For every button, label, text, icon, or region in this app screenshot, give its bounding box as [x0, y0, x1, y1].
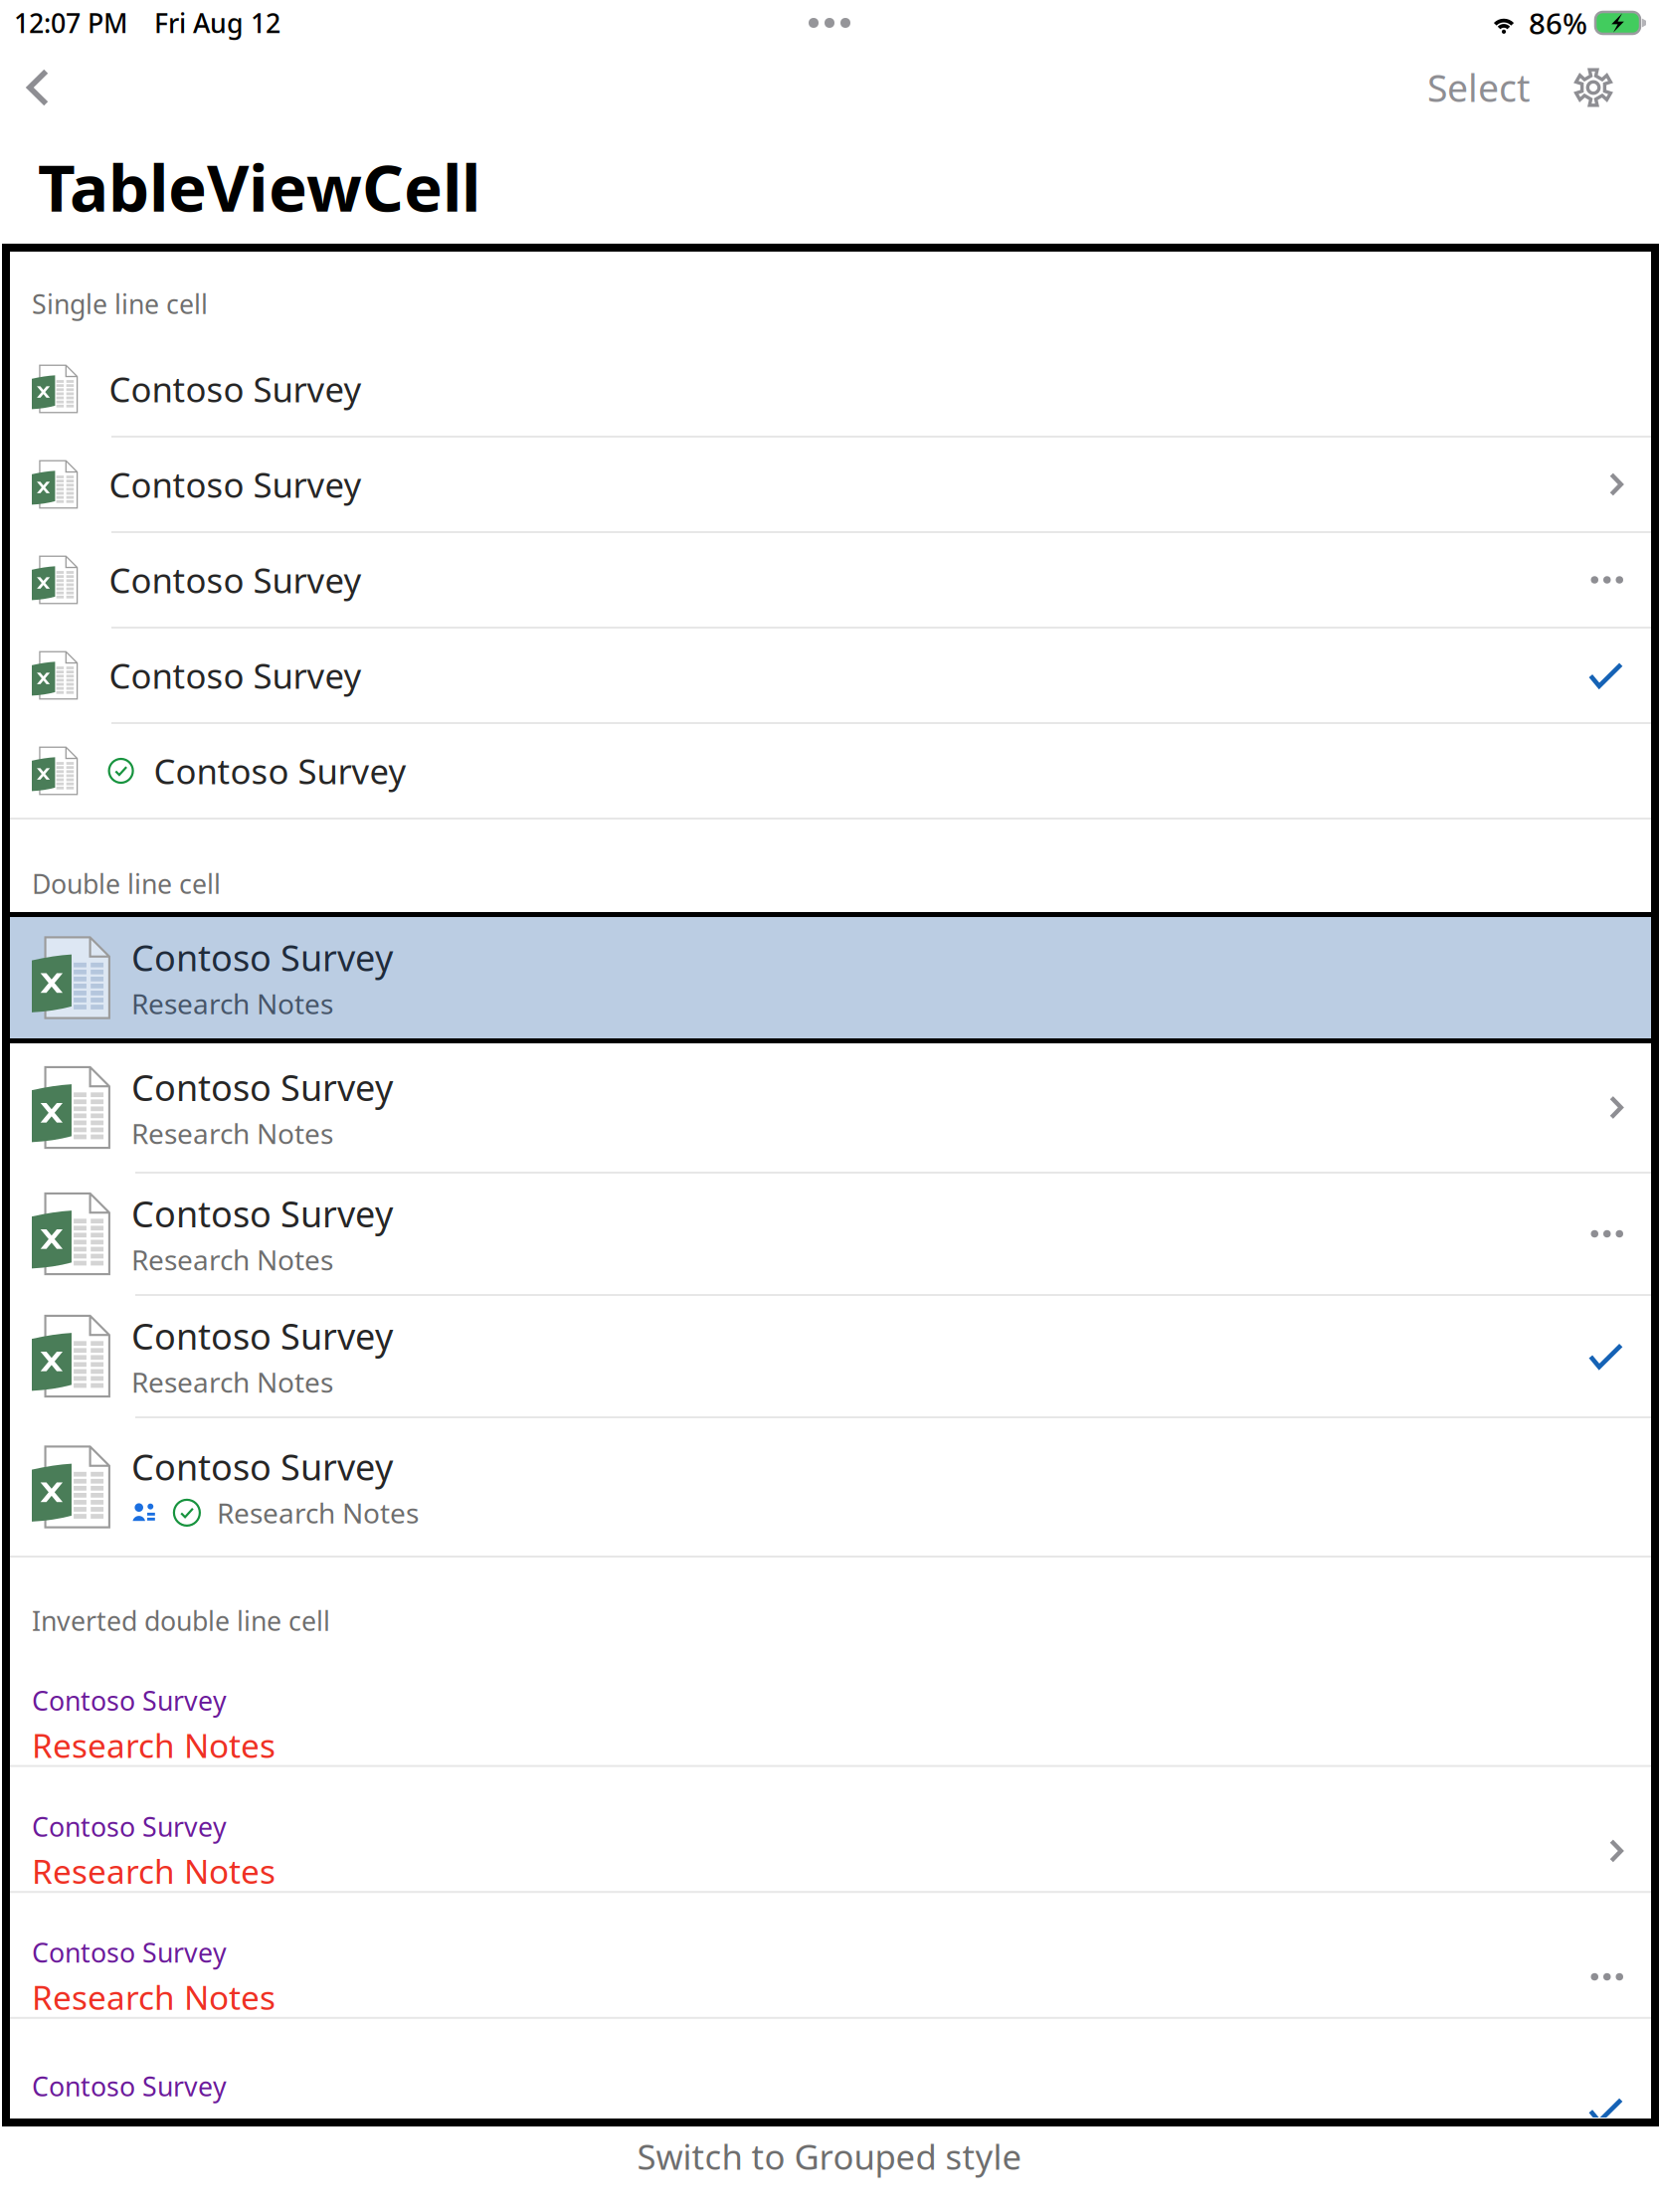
staticText: Research Notes: [32, 1975, 276, 2019]
staticText: Contoso Survey: [109, 557, 362, 603]
staticText: Fri Aug 12: [154, 5, 280, 40]
staticText: Contoso Survey: [109, 652, 362, 698]
staticText: Research Notes: [217, 1494, 419, 1531]
button[interactable]: Contoso Survey: [10, 1767, 1653, 1891]
button[interactable]: Switch to Grouped style: [0, 2126, 1659, 2212]
staticText: Contoso Survey: [109, 461, 362, 507]
button[interactable]: Contoso Survey: [10, 1893, 1653, 2017]
staticText: Contoso Survey: [131, 1312, 393, 1359]
staticText: Double line cell: [32, 866, 221, 901]
staticText: Research Notes: [32, 1723, 276, 1767]
staticText: TableViewCell: [38, 143, 480, 230]
staticText: Contoso Survey: [131, 1443, 393, 1490]
button[interactable]: Contoso Survey: [10, 1043, 1653, 1172]
staticText: Contoso Survey: [109, 366, 362, 412]
button[interactable]: Contoso Survey: [10, 2019, 1653, 2143]
staticText: Contoso Survey: [131, 933, 393, 981]
staticText: Research Notes: [131, 1241, 333, 1278]
button[interactable]: Contoso Survey: [10, 342, 1653, 436]
staticText: 12:07 PM: [14, 5, 127, 40]
button[interactable]: Contoso Survey: [10, 533, 1653, 627]
staticText: Research Notes: [131, 1115, 333, 1152]
staticText: Contoso Survey: [154, 748, 406, 794]
button[interactable]: Contoso Survey: [10, 1296, 1653, 1416]
staticText: Research Notes: [32, 1849, 276, 1893]
staticText: Contoso Survey: [131, 1190, 393, 1237]
button[interactable]: Contoso Survey: [10, 1641, 1653, 1765]
button[interactable]: Contoso Survey: [10, 438, 1653, 531]
staticText: Research Notes: [32, 2109, 276, 2153]
staticText: Contoso Survey: [32, 1809, 227, 1844]
staticText: Select: [1427, 63, 1530, 112]
staticText: Contoso Survey: [32, 2069, 227, 2104]
staticText: Single line cell: [32, 286, 208, 321]
staticText: Switch to Grouped style: [637, 2133, 1022, 2179]
staticText: Research Notes: [131, 985, 333, 1022]
staticText: Contoso Survey: [32, 1935, 227, 1970]
staticText: 86%: [1529, 3, 1587, 42]
button[interactable]: Settings: [1566, 46, 1621, 129]
staticText: Research Notes: [131, 1363, 333, 1400]
staticText: Contoso Survey: [32, 1683, 227, 1718]
staticText: Inverted double line cell: [32, 1603, 330, 1638]
staticText: Contoso Survey: [131, 1063, 393, 1111]
button[interactable]: Contoso Survey: [10, 629, 1653, 722]
button[interactable]: Back: [8, 46, 68, 129]
button[interactable]: Contoso Survey: [10, 917, 1653, 1038]
button[interactable]: Contoso Survey: [10, 724, 1653, 818]
button[interactable]: Select: [1413, 46, 1544, 129]
button[interactable]: Contoso Survey: [10, 1174, 1653, 1294]
button[interactable]: Contoso Survey: [10, 1418, 1653, 1556]
